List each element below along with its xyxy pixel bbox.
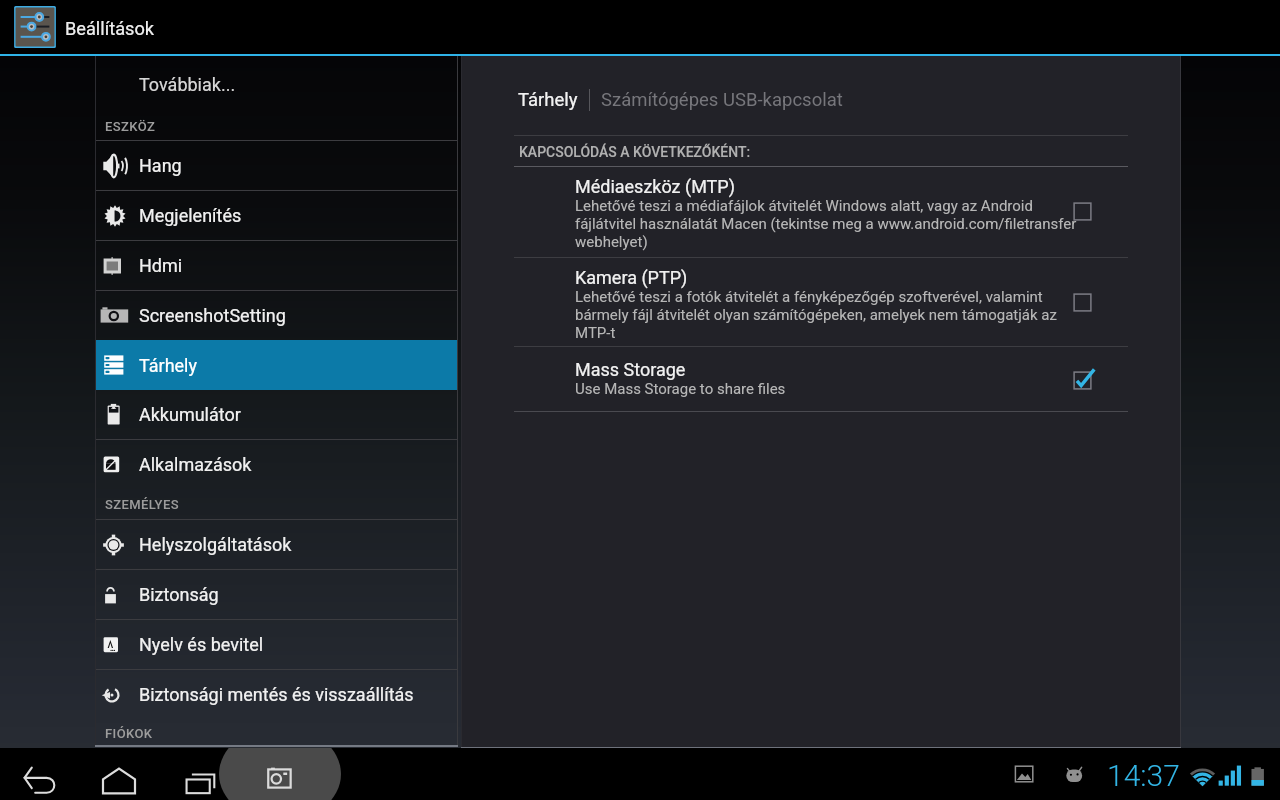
staticText: Nyelv és bevitel (139, 634, 264, 655)
staticText: Megjelenítés (139, 205, 242, 226)
staticText: Hang (139, 155, 182, 176)
button[interactable]: Megjelenítés (96, 191, 457, 240)
staticText: Use Mass Storage to share files (575, 380, 786, 398)
staticText: Helyszolgáltatások (139, 534, 292, 555)
button[interactable]: Biztonság (96, 570, 457, 619)
staticText: 14:37 (1107, 758, 1180, 793)
button[interactable]: Screenshot (263, 761, 298, 796)
button[interactable]: Back (20, 760, 58, 798)
staticText: Tárhely (139, 355, 197, 376)
staticText: Kamera (PTP) (575, 267, 688, 288)
button[interactable]: Biztonsági mentés és visszaállítás (96, 670, 457, 719)
button[interactable]: Recent apps (182, 762, 220, 800)
staticText: Továbbiak... (139, 74, 236, 95)
staticText: FIÓKOK (105, 726, 153, 741)
button[interactable]: Kamera (PTP) (462, 258, 1180, 346)
staticText: Számítógépes USB-kapcsolat (601, 89, 843, 111)
button[interactable]: Helyszolgáltatások (96, 520, 457, 569)
staticText: Akkumulátor (139, 404, 241, 425)
staticText: Biztonsági mentés és visszaállítás (139, 684, 414, 705)
button[interactable]: Médiaeszköz (MTP) (1069, 198, 1099, 228)
button[interactable]: ScreenshotSetting (96, 291, 457, 340)
button[interactable]: Kamera (PTP) (1069, 289, 1099, 319)
button[interactable]: Screenshot captured (1010, 759, 1040, 789)
button[interactable]: Mass Storage (1069, 367, 1099, 397)
staticText: SZEMÉLYES (105, 497, 179, 512)
button[interactable]: Settings (11, 3, 59, 51)
staticText: Alkalmazások (139, 454, 252, 475)
staticText: Beállítások (65, 18, 155, 39)
staticText: Lehetővé teszi a médiafájlok átvitelét W… (575, 197, 1077, 251)
staticText: Biztonság (139, 584, 219, 605)
button[interactable]: Médiaeszköz (MTP) (462, 167, 1180, 257)
staticText: ESZKÖZ (105, 119, 156, 134)
button[interactable]: Home (99, 761, 139, 800)
button[interactable]: Tárhely (96, 340, 457, 390)
button[interactable]: Nyelv és bevitel (96, 620, 457, 669)
staticText: Lehetővé teszi a fotók átvitelét a fényk… (575, 288, 1057, 342)
button[interactable]: Mass Storage (462, 347, 1180, 411)
button[interactable]: Továbbiak... (96, 56, 457, 112)
staticText: Tárhely (518, 89, 578, 111)
staticText: Mass Storage (575, 359, 686, 380)
button[interactable]: Hang (96, 141, 457, 190)
staticText: Médiaeszköz (MTP) (575, 176, 735, 197)
button[interactable]: Alkalmazások (96, 440, 457, 489)
staticText: Hdmi (139, 255, 183, 276)
staticText: KAPCSOLÓDÁS A KÖVETKEZŐKÉNT: (519, 144, 751, 160)
button[interactable]: Akkumulátor (96, 390, 457, 439)
button[interactable]: System update (1060, 759, 1090, 789)
button[interactable]: Hdmi (96, 241, 457, 290)
staticText: ScreenshotSetting (139, 305, 286, 326)
